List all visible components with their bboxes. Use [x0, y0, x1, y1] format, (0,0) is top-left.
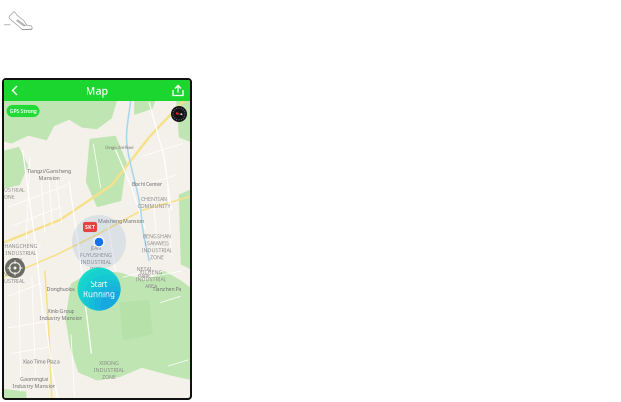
staticText: Donghuolou [46, 285, 75, 292]
staticText: AREA [145, 282, 157, 290]
staticText: GPS Strong [9, 107, 36, 115]
staticText: CITY [11, 256, 22, 263]
staticText: NETAI [137, 265, 152, 272]
button[interactable]: Share [166, 80, 190, 100]
staticText: ZONE [1, 193, 15, 200]
staticText: Industry Mansion [12, 382, 55, 389]
staticText: JIAN [91, 244, 101, 251]
staticText: PARK [138, 272, 150, 279]
staticText: ZONE [102, 373, 116, 381]
staticText: INDUSTRIAL [0, 186, 25, 193]
staticText: INDUSTRIAL [5, 249, 36, 257]
staticText: INDUSTRIAL [81, 258, 112, 265]
staticText: Tianzhen Pa [152, 285, 181, 292]
staticText: INDUSTRIAL [142, 247, 173, 254]
staticText: Industry Mansion [39, 314, 82, 321]
staticText: ZONE [150, 254, 164, 261]
staticText: SKT [85, 223, 95, 231]
staticText: XICHENG [139, 268, 162, 276]
staticText: CHENTIAN [141, 195, 167, 202]
button[interactable]: Center on my location [5, 258, 25, 278]
staticText: Maisheng Mansion [98, 217, 144, 224]
staticText: INGHE [1, 270, 18, 277]
staticText: Xiao Time Plaza [23, 358, 60, 365]
staticText: Gaomingtai [20, 375, 48, 382]
staticText: Tiangzi/Gansheng [27, 167, 71, 174]
staticText: COMMUNITY [137, 202, 170, 209]
staticText: INDUSTRIAL [135, 275, 166, 283]
staticText: Map [85, 83, 108, 98]
button[interactable]: Back [4, 80, 26, 101]
staticText: Bochi Center [132, 180, 162, 187]
staticText: Xinlo Group [47, 307, 74, 314]
staticText: BENGSHAN [143, 233, 171, 240]
staticText: Start [90, 279, 107, 289]
staticText: (SANWEI) [145, 240, 169, 247]
staticText: PARK [90, 265, 102, 272]
staticText: INDUSTRIAL [94, 366, 125, 374]
staticText: Running [83, 289, 115, 299]
staticText: XIRONG [99, 359, 119, 367]
staticText: Qingjiu 2nd Road [105, 144, 133, 150]
staticText: Mansion [38, 174, 59, 181]
staticText: INDUSTRIAL [0, 277, 25, 284]
staticText: HANGCHENG [4, 242, 37, 250]
button[interactable]: Start [77, 267, 120, 310]
staticText: FUYUSHENG [80, 251, 112, 258]
